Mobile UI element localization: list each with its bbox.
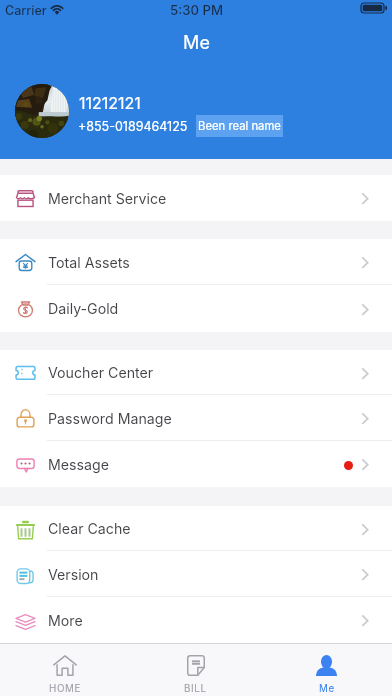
button[interactable]: Voucher Center [0, 350, 392, 395]
button[interactable]: Merchant Service [0, 175, 392, 221]
staticText: Been real name [198, 119, 281, 133]
staticText: +855-0189464125 [78, 119, 188, 134]
staticText: Version [48, 566, 99, 583]
staticText: Password Manage [48, 410, 172, 427]
staticText: HOME [49, 683, 81, 695]
staticText: Me [183, 32, 210, 54]
staticText: More [48, 612, 83, 629]
button[interactable]: Total Assets [0, 239, 392, 285]
button[interactable]: Clear Cache [0, 506, 392, 551]
button[interactable]: HOME [0, 644, 130, 696]
staticText: Clear Cache [48, 520, 131, 537]
button[interactable]: More [0, 597, 392, 643]
button[interactable]: BILL [130, 644, 261, 696]
staticText: Merchant Service [48, 190, 167, 207]
staticText: BILL [184, 683, 207, 695]
button[interactable]: Password Manage [0, 395, 392, 441]
staticText: Message [48, 456, 110, 473]
button[interactable]: Me [261, 644, 392, 696]
staticText: Voucher Center [48, 364, 154, 381]
staticText: Carrier [5, 3, 47, 18]
button[interactable]: Message [0, 441, 392, 487]
staticText: Daily-Gold [48, 300, 119, 317]
staticText: Total Assets [48, 254, 130, 271]
staticText: Me [319, 683, 335, 695]
staticText: 5:30 PM [170, 2, 223, 18]
button[interactable]: Version [0, 551, 392, 597]
staticText: 11212121 [79, 93, 141, 112]
button[interactable]: Daily-Gold [0, 285, 392, 332]
button[interactable]: Profile photo [15, 84, 69, 138]
